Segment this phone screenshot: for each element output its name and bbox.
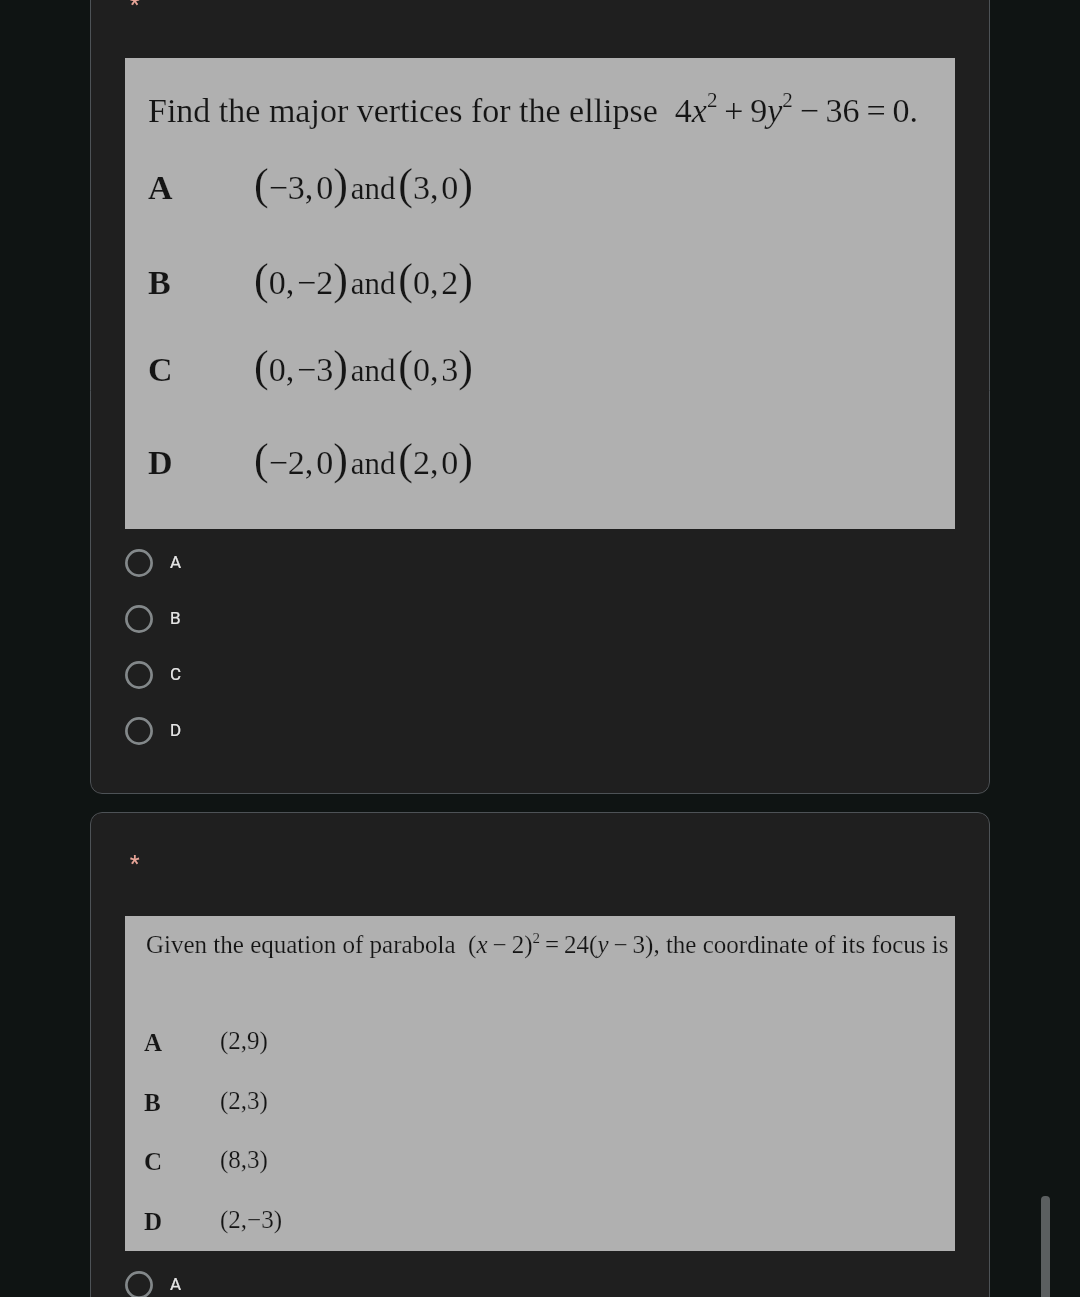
staticText: (2,3): [220, 1087, 268, 1115]
staticText: A: [148, 169, 173, 207]
button[interactable]: C: [90, 647, 990, 703]
staticText: A: [144, 1029, 163, 1057]
staticText: (2,9): [220, 1027, 268, 1055]
staticText: *: [130, 851, 140, 877]
staticText: (2,−3): [220, 1206, 282, 1234]
button[interactable]: D: [90, 703, 990, 759]
other: Scroll position: [1041, 1196, 1050, 1297]
staticText: (8,3): [220, 1146, 268, 1174]
staticText: (−3, 0) and (3, 0): [254, 160, 473, 209]
button[interactable]: *: [90, 812, 990, 1297]
staticText: C: [148, 351, 173, 389]
staticText: A: [170, 1274, 182, 1294]
staticText: *: [130, 0, 140, 18]
staticText: C: [170, 664, 182, 684]
staticText: (0, −3) and (0, 3): [254, 342, 473, 391]
staticText: B: [170, 608, 181, 628]
staticText: (0, −2) and (0, 2): [254, 255, 473, 304]
staticText: Find the major vertices for the ellipse …: [148, 88, 918, 130]
button[interactable]: A: [90, 1257, 990, 1297]
button[interactable]: *: [90, 0, 990, 794]
staticText: D: [170, 720, 182, 740]
staticText: C: [144, 1148, 163, 1176]
staticText: D: [144, 1208, 163, 1236]
staticText: B: [148, 264, 171, 302]
staticText: Given the equation of parabola (x − 2)2 …: [146, 930, 949, 958]
button[interactable]: B: [90, 591, 990, 647]
staticText: D: [148, 444, 173, 482]
staticText: B: [144, 1089, 161, 1117]
staticText: (−2, 0) and (2, 0): [254, 435, 473, 484]
staticText: A: [170, 552, 182, 572]
button[interactable]: A: [90, 535, 990, 591]
